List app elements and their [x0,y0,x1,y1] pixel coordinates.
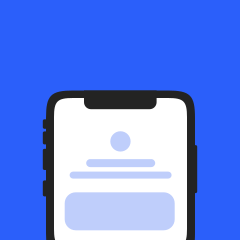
button[interactable]: Volume up [43,131,49,144]
button[interactable]: Volume down [43,149,49,170]
button[interactable]: Continue [65,192,175,230]
button[interactable]: Silent switch [43,119,49,129]
button[interactable]: Side button [192,145,197,193]
button[interactable]: Action button [43,180,49,196]
